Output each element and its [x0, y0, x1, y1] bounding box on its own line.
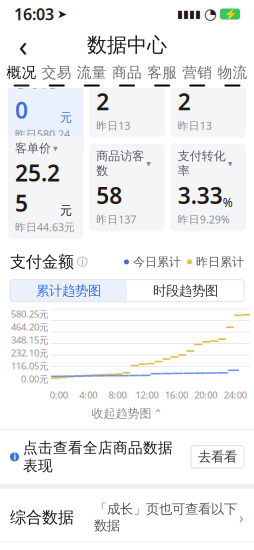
staticText: 0.00元 — [21, 373, 48, 385]
staticText: ▾ — [53, 143, 58, 154]
staticText: 16:00 — [165, 389, 188, 401]
staticText: 概况 — [7, 63, 37, 81]
staticText: 流量 — [77, 63, 107, 81]
staticText: 3.33 — [178, 180, 223, 210]
staticText: 348.15元 — [11, 334, 48, 346]
staticText: 物流 — [217, 63, 247, 81]
staticText: ⌃ — [153, 407, 162, 420]
staticText: 营销 — [182, 63, 212, 81]
staticText: 116.05元 — [11, 360, 48, 372]
staticText: 元 — [60, 203, 72, 218]
staticText: ▾ — [228, 158, 233, 169]
staticText: 2 — [178, 86, 191, 116]
staticText: 昨日137 — [96, 212, 136, 226]
staticText: 元 — [60, 110, 72, 125]
staticText: 交易 — [42, 63, 72, 81]
staticText: 客服 — [147, 63, 177, 81]
button[interactable]: 商品 — [109, 63, 144, 86]
staticText: 昨日13 — [96, 118, 130, 133]
staticText: 时段趋势图 — [153, 283, 218, 299]
staticText: 50.50 — [15, 65, 60, 125]
button[interactable]: 时段趋势图 — [127, 280, 244, 302]
staticText: ▾ — [146, 158, 151, 169]
button[interactable]: 支付转化率 — [171, 144, 246, 231]
staticText: 20:00 — [194, 389, 217, 401]
staticText: 昨日9.29% — [178, 212, 230, 226]
staticText: ⓘ — [74, 255, 88, 268]
button[interactable]: 综合数据 — [0, 489, 254, 538]
staticText: 今日累计 — [129, 255, 181, 269]
staticText: ◔ — [204, 6, 217, 22]
staticText: 232.10元 — [11, 347, 48, 359]
button[interactable]: 累计趋势图 — [10, 280, 127, 302]
staticText: 综合数据 — [10, 507, 74, 527]
button[interactable]: Back — [6, 28, 40, 62]
button[interactable]: 2 — [171, 81, 246, 138]
staticText: 累计趋势图 — [36, 283, 101, 299]
staticText: 580.25元 — [11, 308, 48, 320]
button[interactable]: 商品访客数 — [89, 144, 165, 231]
staticText: 「成长」页也可查看以下数据 — [94, 501, 237, 534]
button[interactable]: 流量 — [74, 63, 109, 86]
button[interactable]: 营销 — [180, 63, 215, 86]
staticText: 支付金额 — [10, 252, 74, 272]
staticText: 464.20元 — [11, 321, 48, 333]
button[interactable]: 物流 — [215, 63, 250, 86]
staticText: 数据中心 — [87, 33, 167, 57]
staticText: 12:00 — [135, 389, 158, 401]
staticText: ➤ — [57, 7, 67, 21]
staticText: 收起趋势图 — [91, 406, 151, 421]
button[interactable]: 概况 — [4, 63, 39, 86]
button[interactable]: 收起趋势图 — [0, 401, 254, 421]
staticText: 商品访客数 — [96, 149, 144, 178]
staticText: 去看看 — [198, 449, 237, 465]
staticText: 昨日44.63元 — [15, 220, 75, 234]
staticText: 点击查看全店商品数据表现 — [23, 439, 173, 475]
button[interactable]: i — [0, 430, 254, 484]
staticText: 24:00 — [224, 389, 247, 401]
staticText: 4:00 — [79, 389, 97, 401]
staticText: 昨日累计 — [192, 255, 244, 269]
staticText: 0:00 — [50, 389, 68, 401]
staticText: 昨日580.24元 — [15, 127, 70, 154]
staticText: 16:03 — [14, 3, 54, 25]
staticText: ‹ — [18, 25, 27, 64]
staticText: 支付转化率 — [178, 149, 226, 178]
button[interactable]: 2 — [89, 81, 165, 138]
button[interactable]: 交易 — [39, 63, 74, 86]
staticText: 58 — [96, 180, 122, 210]
staticText: i — [13, 452, 15, 462]
staticText: ⚡ — [223, 8, 236, 20]
staticText: 商品 — [112, 63, 142, 81]
button[interactable]: 50.50 — [8, 60, 83, 159]
staticText: ▮▮▮▮ — [177, 8, 201, 20]
button[interactable]: 客服 — [145, 63, 180, 86]
staticText: 昨日13 — [178, 118, 212, 133]
staticText: % — [223, 194, 233, 210]
staticText: 8:00 — [109, 389, 127, 401]
staticText: 2 — [96, 86, 109, 116]
staticText: 客单价 — [15, 141, 51, 156]
staticText: 25.25 — [15, 158, 60, 218]
staticText: › — [239, 508, 244, 527]
button[interactable]: 客单价 — [8, 136, 83, 239]
